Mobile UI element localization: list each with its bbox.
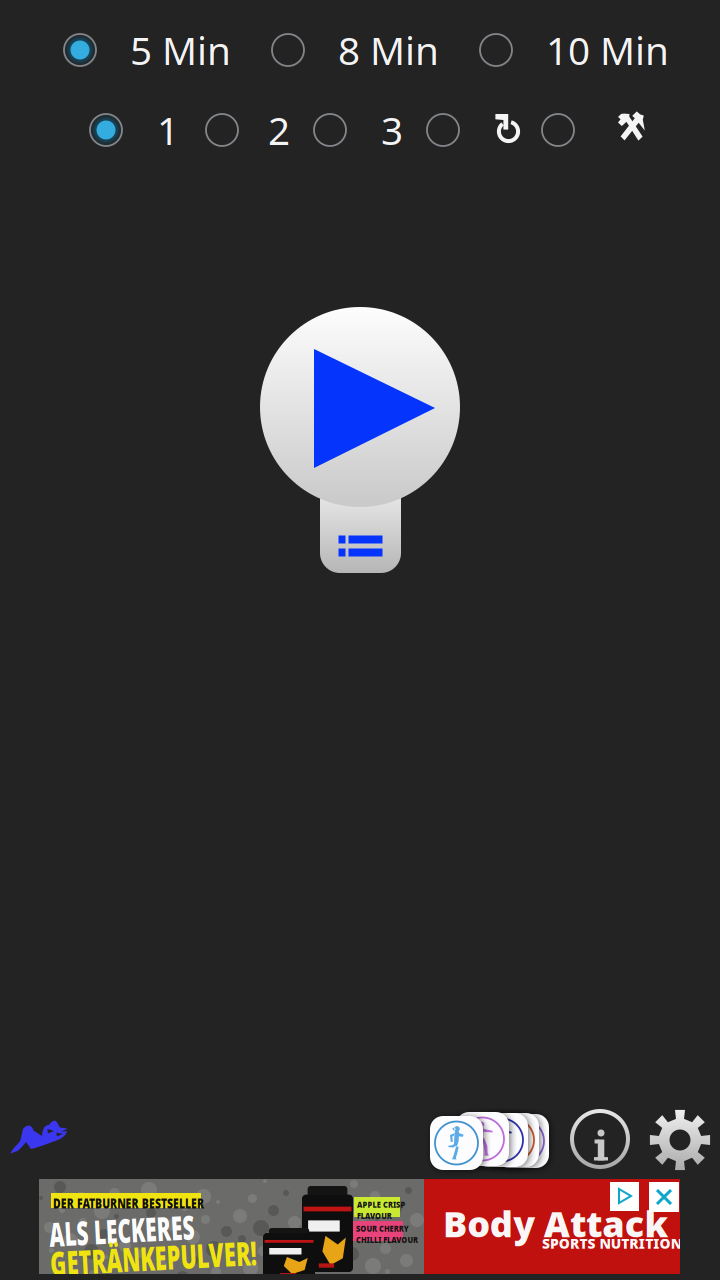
button[interactable]: Close ad (649, 1182, 679, 1212)
button[interactable]: Repeat workout (426, 108, 551, 152)
button[interactable]: 8 Min (271, 33, 448, 67)
button[interactable]: Exercise list (320, 472, 401, 574)
button[interactable]: 5 Min (63, 33, 240, 67)
button[interactable]: Info (570, 1109, 630, 1169)
button[interactable]: 2 (205, 113, 378, 147)
button[interactable]: Ad choices (610, 1182, 639, 1211)
button[interactable]: 3 (313, 113, 491, 147)
staticText: GETRÄNKEPULVER! (49, 1241, 429, 1280)
button[interactable]: Settings (649, 1109, 711, 1171)
staticText: APPLE CRISP FLAVOUR (357, 1199, 435, 1231)
button[interactable]: Exercises (430, 1113, 550, 1169)
button[interactable]: 1 (89, 113, 267, 147)
staticText: 3 (381, 104, 403, 156)
staticText: 10 Min (546, 24, 669, 76)
button[interactable]: 10 Min (479, 33, 656, 67)
button[interactable]: App logo (9, 1116, 71, 1156)
staticText: 1 (157, 104, 179, 156)
staticText: ALS LECKERES (48, 1212, 325, 1265)
staticText: Body Attack (443, 1201, 693, 1254)
staticText: SPORTS NUTRITION (542, 1235, 717, 1258)
button[interactable]: Start workout (260, 307, 460, 507)
button[interactable]: Custom workout (541, 108, 671, 152)
staticText: DER FATBURNER BESTSELLER (53, 1194, 305, 1217)
staticText: 5 Min (130, 24, 231, 76)
staticText: 8 Min (338, 24, 439, 76)
staticText: 2 (268, 104, 290, 156)
staticText: SOUR CHERRY CHILLI FLAVOUR (356, 1223, 456, 1255)
